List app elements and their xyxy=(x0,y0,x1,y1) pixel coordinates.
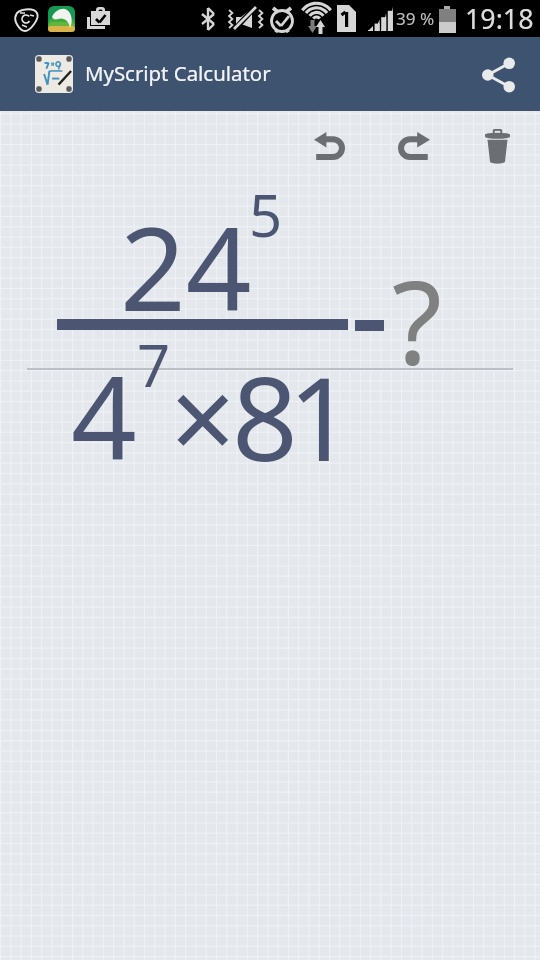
staticText: 5 xyxy=(249,175,283,254)
staticText: 1 xyxy=(288,338,354,495)
staticText: 7 xyxy=(137,325,171,404)
staticText: 19:18 xyxy=(465,0,534,37)
button[interactable]: Delete xyxy=(464,119,531,173)
button[interactable]: Share xyxy=(466,43,530,107)
staticText: ? xyxy=(392,241,442,398)
button[interactable]: Redo xyxy=(380,119,447,173)
staticText: MyScript Calculator xyxy=(85,59,271,87)
button[interactable]: MyScript Calculator icon xyxy=(35,55,73,93)
staticText: × xyxy=(170,338,236,495)
button[interactable]: Undo xyxy=(296,119,363,173)
staticText: 39 % xyxy=(396,7,435,30)
staticText: 24 xyxy=(120,188,252,345)
staticText: 8 xyxy=(232,338,298,495)
staticText: 4 xyxy=(71,337,137,494)
